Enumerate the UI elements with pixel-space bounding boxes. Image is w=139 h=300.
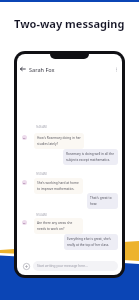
button[interactable]: Rosemary is doing well in all the subjec… bbox=[63, 149, 118, 165]
staticText: SF bbox=[23, 181, 26, 184]
staticText: 9:46 AM bbox=[36, 125, 47, 129]
staticText: Everything else is great, she's really a… bbox=[67, 237, 115, 247]
button[interactable]: How's Rosemary doing in her studies late… bbox=[34, 133, 84, 149]
button[interactable]: Start writing your message here... bbox=[33, 261, 118, 271]
button[interactable]: Are there any areas she needs to work on… bbox=[34, 218, 83, 234]
button[interactable]: Everything else is great, she's really a… bbox=[64, 234, 118, 250]
button[interactable]: More options bbox=[111, 64, 122, 75]
staticText: 9:54 AM bbox=[36, 213, 47, 217]
staticText: How's Rosemary doing in her studies late… bbox=[37, 136, 81, 146]
staticText: SF bbox=[23, 221, 26, 224]
staticText: That's great to hear. bbox=[90, 196, 115, 206]
button[interactable]: That's great to hear. bbox=[87, 193, 118, 209]
staticText: SF bbox=[23, 136, 26, 139]
staticText: Are there any areas she needs to work on… bbox=[37, 221, 80, 231]
staticText: Two-way messaging bbox=[14, 16, 125, 31]
staticText: 9:50 AM bbox=[36, 172, 47, 176]
button[interactable]: Back bbox=[17, 63, 29, 75]
staticText: Rosemary is doing well in all the subjec… bbox=[66, 152, 115, 162]
button[interactable]: She's working hard at home to improve ma… bbox=[34, 178, 83, 194]
staticText: She's working hard at home to improve ma… bbox=[37, 181, 80, 191]
staticText: Start writing your message here... bbox=[37, 264, 88, 268]
button[interactable]: Add attachment bbox=[21, 261, 31, 271]
staticText: Sarah Fox bbox=[29, 66, 55, 73]
